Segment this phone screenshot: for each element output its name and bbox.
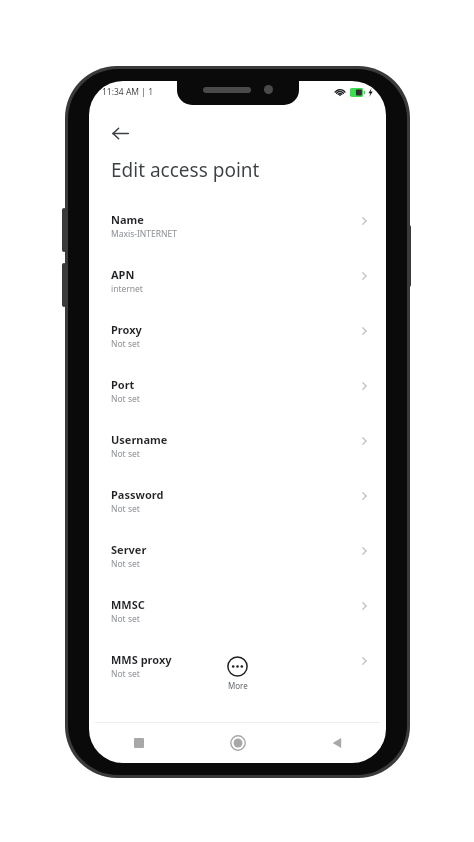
button[interactable]: Proxy — [89, 315, 386, 370]
staticText: Server — [111, 542, 147, 557]
button[interactable]: Home — [188, 723, 287, 763]
button[interactable]: Username — [89, 425, 386, 480]
button[interactable]: Back — [287, 723, 386, 763]
staticText: Port — [111, 377, 135, 392]
staticText: Not set — [111, 448, 140, 460]
staticText: Not set — [111, 393, 140, 405]
button[interactable]: Port — [89, 370, 386, 425]
staticText: Not set — [111, 613, 140, 625]
staticText: Not set — [111, 338, 140, 350]
staticText: Not set — [111, 558, 140, 570]
button[interactable]: Back — [100, 113, 140, 153]
staticText: internet — [111, 283, 143, 295]
staticText: Edit access point — [111, 157, 260, 183]
button[interactable]: MMSC — [89, 590, 386, 645]
staticText: Username — [111, 432, 168, 447]
staticText: APN — [111, 267, 135, 282]
staticText: Proxy — [111, 322, 142, 337]
button[interactable]: Server — [89, 535, 386, 590]
staticText: Password — [111, 487, 164, 502]
staticText: Not set — [111, 503, 140, 515]
staticText: 11:34 AM | 1 — [102, 86, 154, 98]
staticText: Name — [111, 212, 144, 227]
staticText: Not set — [111, 668, 140, 680]
staticText: MMSC — [111, 597, 145, 612]
staticText: MMS proxy — [111, 652, 172, 667]
staticText: Maxis-INTERNET — [111, 228, 177, 240]
button[interactable]: Name — [89, 205, 386, 260]
button[interactable]: Recent apps — [89, 723, 188, 763]
staticText: More — [228, 680, 248, 691]
button[interactable]: More — [227, 656, 248, 691]
button[interactable]: Password — [89, 480, 386, 535]
button[interactable]: MMS proxy — [89, 645, 386, 700]
button[interactable]: APN — [89, 260, 386, 315]
